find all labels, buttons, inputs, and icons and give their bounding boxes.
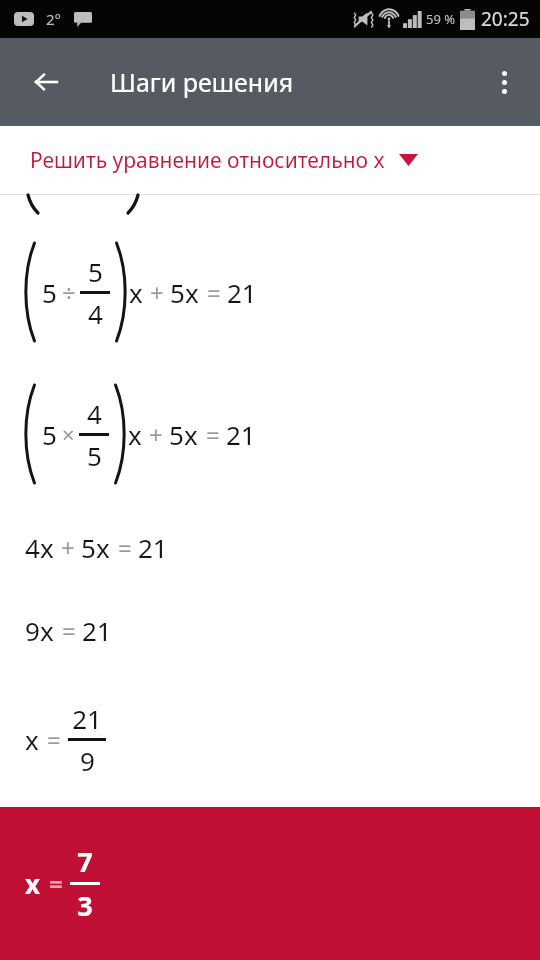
button[interactable]: Back: [20, 56, 72, 108]
staticText: +: [149, 418, 163, 451]
staticText: x: [128, 417, 142, 452]
button[interactable]: 5: [0, 363, 540, 505]
staticText: 9: [80, 743, 95, 778]
staticText: +: [61, 531, 75, 564]
staticText: 3: [77, 887, 93, 924]
staticText: x: [25, 722, 39, 757]
button[interactable]: 9: [0, 589, 540, 672]
staticText: x: [185, 275, 199, 310]
staticText: ×: [62, 419, 75, 449]
staticText: x: [40, 613, 54, 648]
staticText: 21: [138, 530, 168, 565]
staticText: 21: [227, 275, 257, 310]
staticText: 21: [82, 613, 112, 648]
button[interactable]: 5: [0, 221, 540, 363]
staticText: 9: [25, 613, 40, 648]
staticText: 5: [170, 275, 185, 310]
staticText: x: [129, 275, 143, 310]
staticText: =: [118, 531, 132, 564]
staticText: 5: [88, 254, 103, 289]
staticText: 5: [42, 417, 57, 452]
staticText: ÷: [62, 276, 76, 309]
staticText: =: [49, 867, 63, 900]
staticText: =: [207, 276, 221, 309]
button[interactable]: x: [0, 807, 540, 960]
staticText: 5: [81, 530, 96, 565]
staticText: Решить уравнение относительно x: [30, 146, 385, 175]
staticText: Шаги решения: [110, 65, 294, 99]
staticText: 5: [169, 417, 184, 452]
button[interactable]: 4: [0, 505, 540, 589]
staticText: 5: [87, 438, 102, 473]
staticText: =: [206, 418, 220, 451]
staticText: +: [150, 276, 164, 309]
staticText: x: [40, 530, 54, 565]
staticText: 7: [77, 843, 93, 880]
staticText: 4: [87, 396, 102, 431]
staticText: 20:25: [481, 6, 530, 32]
staticText: =: [47, 723, 61, 756]
staticText: 59 %: [426, 10, 456, 28]
staticText: 5: [42, 275, 57, 310]
button[interactable]: More options: [480, 58, 528, 106]
staticText: x: [184, 417, 198, 452]
staticText: 4: [88, 296, 103, 331]
staticText: 2°: [46, 9, 62, 29]
button[interactable]: x: [0, 672, 540, 807]
staticText: =: [62, 614, 76, 647]
staticText: 4: [25, 530, 40, 565]
button[interactable]: Решить уравнение относительно x: [0, 126, 540, 194]
staticText: x: [96, 530, 110, 565]
staticText: x: [25, 866, 41, 901]
staticText: 21: [72, 701, 102, 736]
staticText: 21: [226, 417, 256, 452]
